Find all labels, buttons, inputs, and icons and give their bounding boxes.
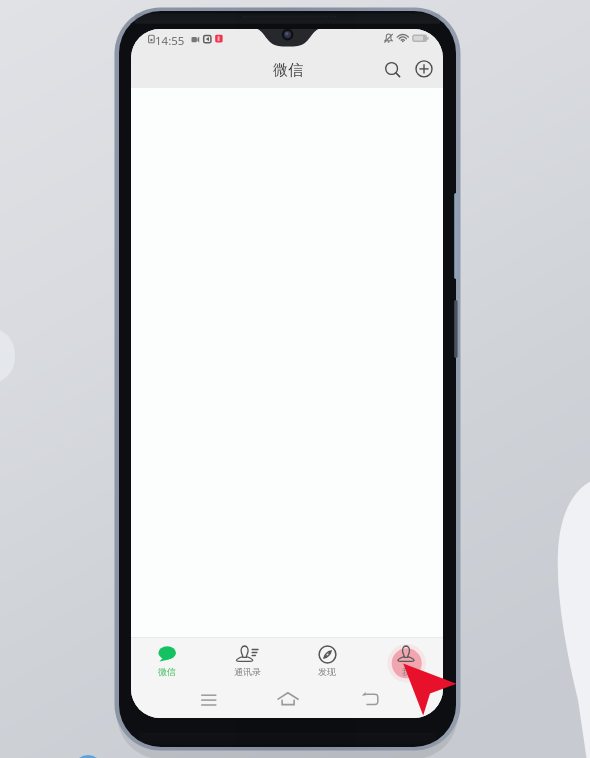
staticText: 通讯录	[234, 666, 261, 677]
staticText: 我	[402, 666, 411, 677]
button[interactable]: 微信	[265, 57, 311, 83]
staticText: 微信	[158, 666, 176, 677]
button[interactable]: Back	[350, 686, 390, 716]
button[interactable]: Recents	[189, 686, 229, 716]
button[interactable]: Home	[268, 686, 308, 716]
button[interactable]: Add	[410, 55, 438, 83]
button[interactable]: 微信	[128, 638, 206, 686]
staticText: 微信	[273, 61, 303, 80]
staticText: 发现	[318, 666, 336, 677]
button[interactable]: 通讯录	[208, 638, 286, 686]
staticText: 14:55	[155, 33, 185, 49]
button[interactable]: 我	[367, 638, 445, 686]
button[interactable]: 发现	[288, 638, 366, 686]
button[interactable]: Search	[378, 55, 406, 83]
